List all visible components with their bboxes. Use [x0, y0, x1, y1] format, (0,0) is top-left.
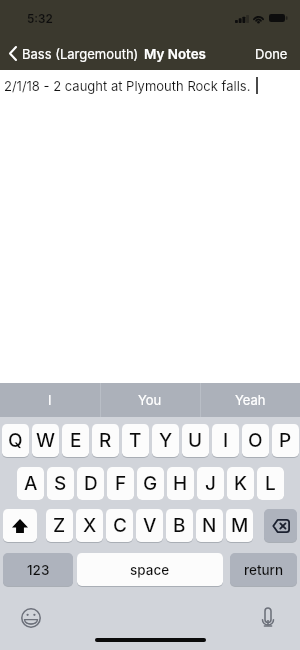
button[interactable]: P — [272, 424, 299, 457]
staticText: 2/1/18 - 2 caught at Plymouth Rock falls… — [4, 78, 251, 94]
staticText: My Notes — [144, 46, 206, 62]
button[interactable]: Z — [46, 509, 73, 542]
button[interactable]: Y — [152, 424, 179, 457]
button[interactable]: S — [47, 467, 74, 500]
button[interactable]: Emoji keyboard — [21, 608, 41, 628]
button[interactable]: Yeah — [200, 383, 300, 417]
button[interactable]: Shift — [3, 509, 37, 542]
button[interactable]: Done — [243, 41, 300, 67]
button[interactable]: Back to Bass (Largemouth) — [0, 41, 140, 67]
staticText: H — [173, 472, 188, 495]
staticText: N — [202, 514, 217, 537]
staticText: X — [83, 514, 97, 537]
staticText: Yeah — [235, 392, 266, 408]
button[interactable]: I — [0, 383, 100, 417]
button[interactable]: L — [257, 467, 284, 500]
staticText: W — [36, 429, 56, 452]
staticText: You — [138, 392, 162, 408]
button[interactable]: D — [77, 467, 104, 500]
staticText: 123 — [27, 562, 50, 578]
staticText: J — [205, 472, 216, 495]
button[interactable]: R — [92, 424, 119, 457]
staticText: S — [54, 472, 67, 495]
staticText: return — [244, 562, 284, 578]
staticText: Q — [8, 429, 23, 452]
staticText: B — [173, 514, 186, 537]
button[interactable]: F — [107, 467, 134, 500]
staticText: F — [115, 472, 127, 495]
button[interactable]: C — [106, 509, 133, 542]
staticText: D — [84, 472, 98, 495]
button[interactable]: X — [76, 509, 103, 542]
button[interactable]: space — [77, 553, 223, 586]
button[interactable]: A — [17, 467, 44, 500]
staticText: Y — [159, 429, 173, 452]
button[interactable]: Backspace — [264, 509, 297, 542]
button[interactable]: return — [230, 553, 297, 586]
button[interactable]: E — [62, 424, 89, 457]
button[interactable]: M — [226, 509, 253, 542]
staticText: U — [188, 429, 203, 452]
button[interactable]: T — [122, 424, 149, 457]
staticText: I — [48, 392, 52, 408]
staticText: T — [129, 429, 142, 452]
staticText: E — [70, 429, 82, 452]
button[interactable]: U — [182, 424, 209, 457]
staticText: G — [143, 472, 158, 495]
button[interactable]: V — [136, 509, 163, 542]
staticText: P — [279, 429, 292, 452]
button[interactable]: W — [32, 424, 59, 457]
staticText: C — [113, 514, 127, 537]
staticText: V — [143, 514, 157, 537]
button[interactable]: K — [227, 467, 254, 500]
staticText: K — [234, 472, 248, 495]
button[interactable]: G — [137, 467, 164, 500]
button[interactable]: J — [197, 467, 224, 500]
button[interactable]: O — [242, 424, 269, 457]
button[interactable]: N — [196, 509, 223, 542]
button[interactable]: You — [100, 383, 200, 417]
staticText: Bass (Largemouth) — [22, 46, 139, 62]
staticText: A — [24, 472, 38, 495]
button[interactable]: H — [167, 467, 194, 500]
button[interactable]: 123 — [3, 553, 73, 586]
button[interactable]: I — [212, 424, 239, 457]
staticText: O — [248, 429, 263, 452]
staticText: space — [130, 562, 170, 578]
staticText: Z — [53, 514, 66, 537]
staticText: R — [99, 429, 112, 452]
staticText: M — [231, 514, 249, 537]
staticText: Done — [255, 46, 288, 62]
button[interactable]: Q — [2, 424, 29, 457]
button[interactable]: Dictation — [261, 607, 275, 629]
staticText: I — [223, 429, 229, 452]
button[interactable]: B — [166, 509, 193, 542]
staticText: L — [265, 472, 276, 495]
staticText: 5:32 — [27, 12, 53, 26]
